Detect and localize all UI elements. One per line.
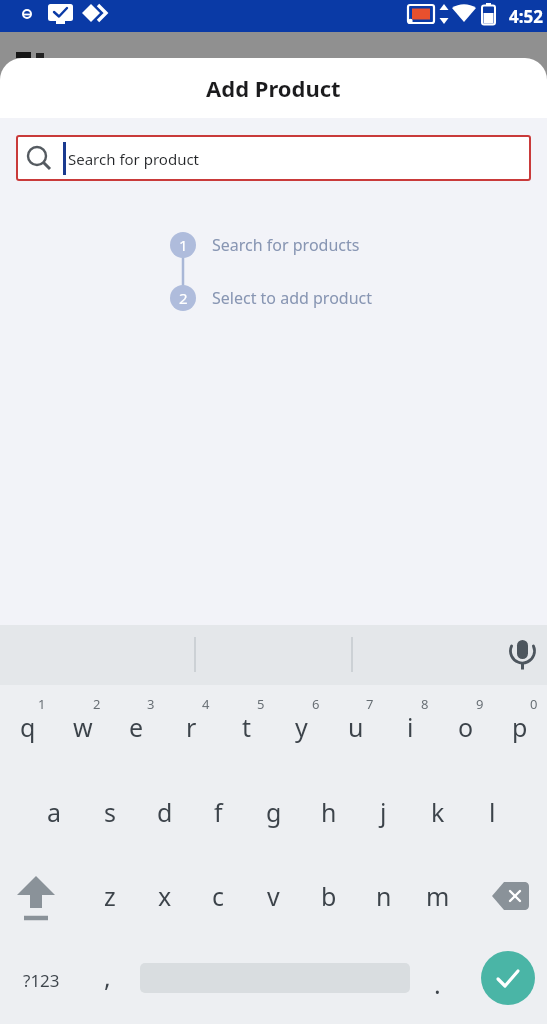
staticText: d <box>157 795 173 829</box>
staticText: 8 <box>421 695 429 713</box>
staticText: Add Product <box>206 73 341 103</box>
button[interactable]: m <box>410 863 465 929</box>
button[interactable]: 2 <box>0 285 373 311</box>
button[interactable]: ?123 <box>8 947 74 1013</box>
staticText: 5 <box>257 695 265 713</box>
staticText: a <box>47 795 62 829</box>
staticText: i <box>407 710 414 744</box>
button[interactable]: 1 <box>0 232 360 258</box>
button[interactable]: d <box>137 779 192 845</box>
button[interactable]: x <box>137 863 192 929</box>
staticText: 4:52 <box>509 5 543 28</box>
button[interactable]: r <box>164 693 219 759</box>
button[interactable]: i <box>383 693 438 759</box>
button[interactable] <box>478 863 544 929</box>
staticText: v <box>267 879 280 913</box>
button[interactable]: k <box>410 779 465 845</box>
button[interactable]: a <box>27 779 82 845</box>
staticText: s <box>104 795 116 829</box>
button[interactable]: . <box>412 947 462 1013</box>
button[interactable]: p <box>492 693 547 759</box>
staticText: 1 <box>38 695 46 713</box>
button[interactable]: g <box>246 779 301 845</box>
staticText: k <box>431 795 445 829</box>
staticText: x <box>158 879 172 913</box>
staticText: p <box>512 710 528 744</box>
staticText: c <box>212 879 225 913</box>
staticText: w <box>73 710 93 744</box>
staticText: z <box>104 879 116 913</box>
staticText: b <box>321 879 337 913</box>
staticText: g <box>266 795 282 829</box>
staticText: 2 <box>179 288 188 308</box>
button[interactable]: e <box>109 693 164 759</box>
staticText: e <box>129 710 144 744</box>
button[interactable]: j <box>356 779 411 845</box>
button[interactable]: Search for product <box>16 135 531 181</box>
button[interactable]: s <box>82 779 137 845</box>
staticText: m <box>426 879 450 913</box>
staticText: , <box>104 960 111 994</box>
button[interactable]: z <box>82 863 137 929</box>
staticText: 9 <box>476 695 484 713</box>
button[interactable]: w <box>55 693 110 759</box>
button[interactable]: n <box>356 863 411 929</box>
staticText: u <box>348 710 364 744</box>
staticText: n <box>376 879 392 913</box>
button[interactable]: t <box>219 693 274 759</box>
button[interactable] <box>487 625 547 685</box>
button[interactable]: o <box>438 693 493 759</box>
staticText: 2 <box>93 695 101 713</box>
staticText: t <box>242 710 252 744</box>
button[interactable]: y <box>274 693 329 759</box>
staticText: 0 <box>530 695 538 713</box>
staticText: y <box>295 710 308 744</box>
staticText: j <box>380 795 387 829</box>
staticText: h <box>321 795 337 829</box>
staticText: 1 <box>179 235 188 255</box>
button[interactable] <box>3 863 69 929</box>
button[interactable]: b <box>301 863 356 929</box>
staticText: 7 <box>366 695 374 713</box>
staticText: 6 <box>312 695 320 713</box>
button[interactable]: f <box>191 779 246 845</box>
staticText: Select to add product <box>212 287 373 309</box>
button[interactable]: h <box>301 779 356 845</box>
button[interactable]: q <box>0 693 55 759</box>
staticText: r <box>186 710 197 744</box>
staticText: Search for product <box>68 149 200 169</box>
staticText: 4 <box>202 695 210 713</box>
button[interactable]: , <box>82 947 132 1013</box>
staticText: ?123 <box>23 969 60 992</box>
staticText: . <box>434 967 441 1001</box>
staticText: o <box>458 710 474 744</box>
staticText: q <box>20 710 36 744</box>
button[interactable]: l <box>465 779 520 845</box>
button[interactable]: v <box>246 863 301 929</box>
staticText: f <box>214 795 223 829</box>
staticText: Search for products <box>212 234 360 256</box>
staticText: l <box>489 795 496 829</box>
staticText: 3 <box>147 695 155 713</box>
button[interactable] <box>481 951 535 1005</box>
button[interactable]: u <box>328 693 383 759</box>
button[interactable]: c <box>191 863 246 929</box>
